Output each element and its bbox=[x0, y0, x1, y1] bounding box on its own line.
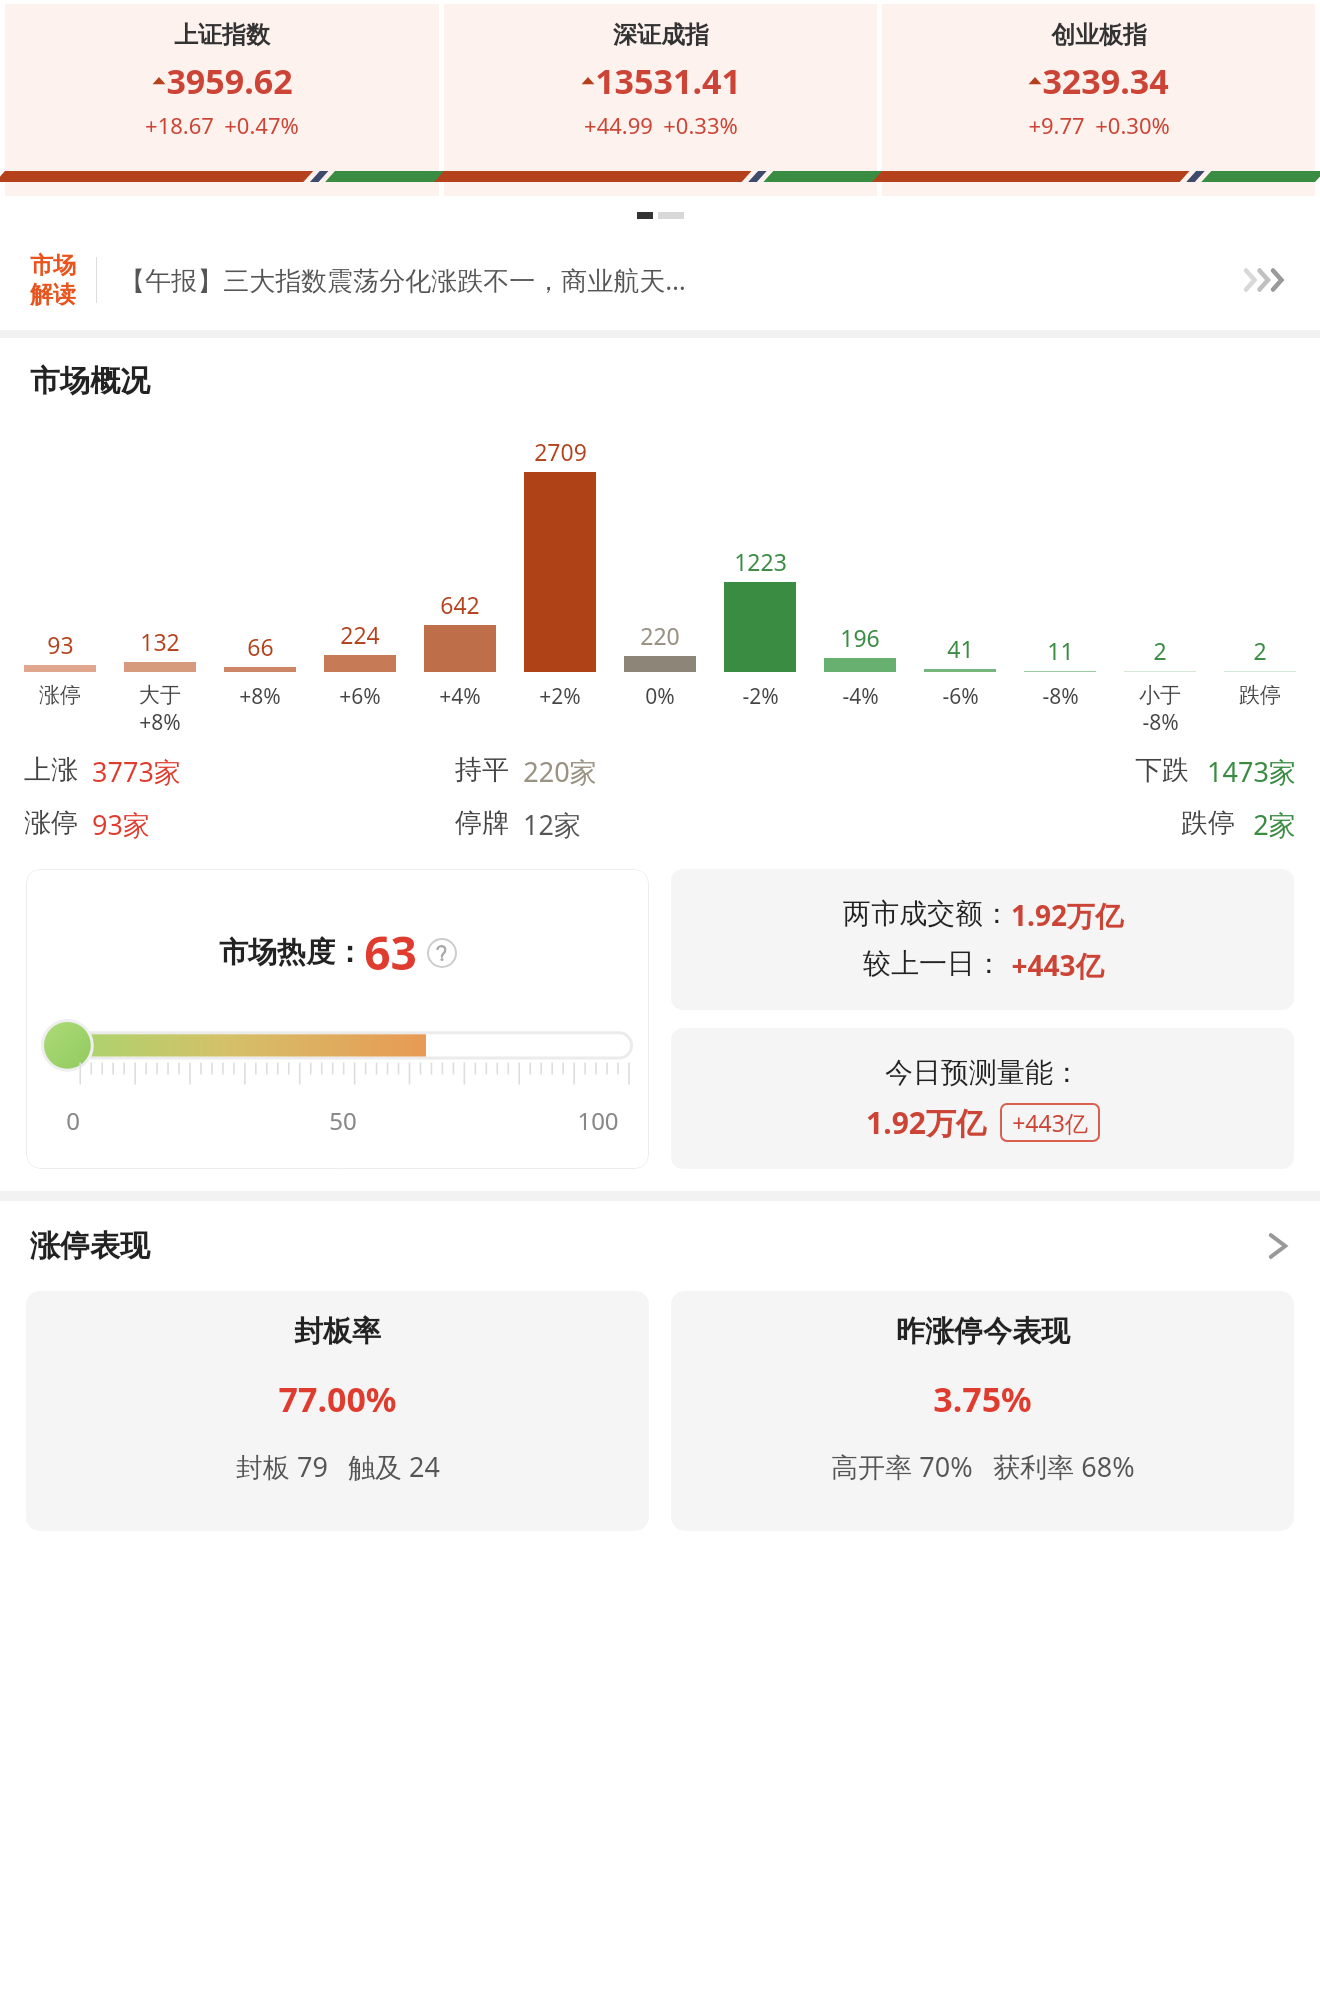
staticText: 0% bbox=[645, 682, 675, 711]
button[interactable]: 深证成指 bbox=[444, 4, 877, 196]
staticText: 93家 bbox=[92, 806, 150, 843]
staticText: 封板率 bbox=[294, 1313, 381, 1350]
staticText: 市场热度： bbox=[219, 934, 364, 971]
staticText: 1223 bbox=[734, 546, 787, 577]
staticText: 较上一日： bbox=[863, 946, 1003, 981]
staticText: 市场 bbox=[30, 251, 76, 280]
staticText: 创业板指 bbox=[1051, 20, 1147, 50]
staticText: 涨停 bbox=[39, 682, 81, 708]
staticText: 220 bbox=[640, 620, 680, 651]
staticText: 涨停表现 bbox=[30, 1227, 150, 1265]
staticText: 获利率 68% bbox=[993, 1448, 1135, 1485]
staticText: 解读 bbox=[30, 280, 76, 309]
button[interactable]: 市场 bbox=[0, 230, 1320, 330]
button[interactable]: 创业板指 bbox=[882, 4, 1315, 196]
staticText: 封板 79 bbox=[236, 1448, 328, 1485]
staticText: 11 bbox=[1047, 635, 1074, 666]
staticText: 0 bbox=[66, 1104, 80, 1137]
staticText: -8% bbox=[1042, 682, 1079, 711]
staticText: 持平 bbox=[455, 753, 509, 787]
staticText: +44.99 bbox=[584, 110, 653, 140]
staticText: +443亿 bbox=[1011, 946, 1104, 984]
other: Info bbox=[427, 938, 457, 968]
staticText: 触及 24 bbox=[348, 1448, 440, 1485]
staticText: +0.47% bbox=[224, 110, 299, 140]
staticText: +9.77 bbox=[1028, 110, 1085, 140]
staticText: 196 bbox=[840, 622, 880, 653]
other: More news bbox=[1240, 265, 1290, 295]
staticText: 3.75% bbox=[933, 1376, 1032, 1422]
staticText: 1.92万亿 bbox=[866, 1102, 986, 1143]
staticText: 高开率 70% bbox=[831, 1448, 973, 1485]
staticText: 涨停 bbox=[24, 806, 78, 840]
staticText: 63 bbox=[364, 921, 417, 984]
button[interactable]: 上证指数 bbox=[5, 4, 439, 196]
staticText: 3959.62 bbox=[166, 58, 293, 104]
staticText: 小于 bbox=[1139, 682, 1181, 708]
staticText: 市场概况 bbox=[30, 362, 150, 400]
button[interactable]: 两市成交额： bbox=[671, 869, 1294, 1010]
staticText: 上涨 bbox=[24, 753, 78, 787]
staticText: 132 bbox=[140, 626, 180, 657]
staticText: 2 bbox=[1253, 635, 1267, 666]
staticText: +0.30% bbox=[1095, 110, 1170, 140]
staticText: 66 bbox=[247, 631, 274, 662]
staticText: 【午报】三大指数震荡分化涨跌不一，商业航天… bbox=[119, 262, 686, 298]
staticText: 跌停 bbox=[1181, 806, 1235, 840]
staticText: 642 bbox=[440, 589, 480, 620]
button[interactable]: 涨停表现 bbox=[0, 1227, 1320, 1265]
staticText: 1.92万亿 bbox=[1011, 896, 1123, 934]
button[interactable]: 市场热度： bbox=[26, 869, 649, 1169]
staticText: +0.33% bbox=[663, 110, 738, 140]
staticText: -6% bbox=[942, 682, 979, 711]
staticText: -8% bbox=[1142, 708, 1179, 737]
staticText: 停牌 bbox=[455, 806, 509, 840]
staticText: 3773家 bbox=[92, 753, 181, 790]
staticText: 两市成交额： bbox=[843, 896, 1011, 931]
staticText: +8% bbox=[139, 708, 181, 737]
staticText: +6% bbox=[339, 682, 381, 711]
staticText: +18.67 bbox=[145, 110, 214, 140]
staticText: 2709 bbox=[534, 436, 587, 467]
staticText: 2 bbox=[1153, 635, 1167, 666]
staticText: +4% bbox=[439, 682, 481, 711]
staticText: 上证指数 bbox=[174, 20, 270, 50]
staticText: 深证成指 bbox=[613, 20, 709, 50]
staticText: 跌停 bbox=[1239, 682, 1281, 708]
staticText: +443亿 bbox=[1012, 1107, 1088, 1138]
staticText: 大于 bbox=[139, 682, 181, 708]
staticText: 100 bbox=[577, 1104, 619, 1137]
staticText: 220家 bbox=[523, 753, 597, 790]
staticText: 2家 bbox=[1253, 806, 1296, 843]
button[interactable]: 昨涨停今表现 bbox=[671, 1291, 1294, 1531]
staticText: 下跌 bbox=[1135, 753, 1189, 787]
other: More bbox=[1266, 1229, 1290, 1263]
staticText: 今日预测量能： bbox=[885, 1055, 1081, 1090]
staticText: 93 bbox=[47, 629, 74, 660]
staticText: 1473家 bbox=[1207, 753, 1296, 790]
staticText: 77.00% bbox=[278, 1376, 397, 1422]
staticText: 224 bbox=[340, 619, 380, 650]
staticText: 3239.34 bbox=[1042, 58, 1169, 104]
staticText: 41 bbox=[947, 633, 974, 664]
staticText: 12家 bbox=[523, 806, 581, 843]
button[interactable]: 今日预测量能： bbox=[671, 1028, 1294, 1169]
staticText: 50 bbox=[329, 1104, 357, 1137]
staticText: -2% bbox=[742, 682, 779, 711]
button[interactable]: 封板率 bbox=[26, 1291, 649, 1531]
staticText: +8% bbox=[239, 682, 281, 711]
staticText: 昨涨停今表现 bbox=[896, 1313, 1070, 1350]
staticText: 13531.41 bbox=[595, 58, 741, 104]
staticText: +2% bbox=[539, 682, 581, 711]
staticText: -4% bbox=[842, 682, 879, 711]
